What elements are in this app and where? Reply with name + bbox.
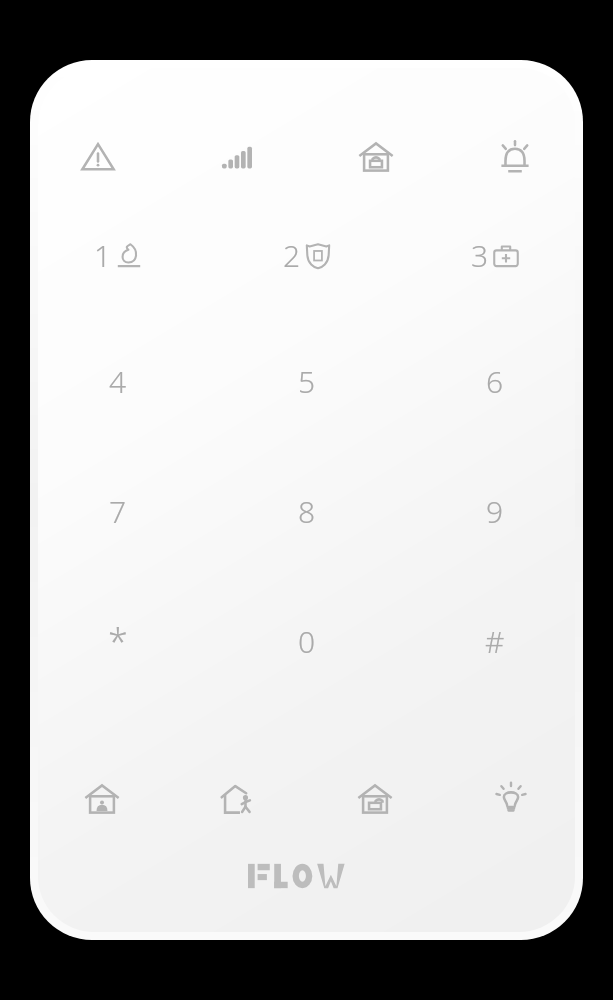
button[interactable]: * (60, 610, 176, 672)
button[interactable]: 3 (437, 220, 553, 290)
staticText: 4 (109, 361, 127, 402)
button[interactable]: 8 (249, 480, 365, 542)
staticText: 0 (298, 621, 316, 662)
staticText: # (485, 621, 505, 662)
button[interactable]: Trouble (60, 126, 136, 188)
button[interactable]: Arm stay (64, 768, 140, 830)
staticText: * (108, 617, 128, 666)
button[interactable]: # (437, 610, 553, 672)
staticText: 8 (298, 491, 316, 532)
button[interactable]: Lights (473, 768, 549, 830)
button[interactable]: 2 (249, 220, 365, 290)
staticText: 7 (109, 491, 127, 532)
button[interactable]: 6 (437, 350, 553, 412)
button[interactable]: Signal strength (199, 126, 275, 188)
button[interactable]: 4 (60, 350, 176, 412)
staticText: 6 (486, 361, 504, 402)
button[interactable]: Disarm (337, 768, 413, 830)
staticText: 2 (283, 235, 301, 276)
staticText: 5 (298, 361, 316, 402)
staticText: 9 (486, 491, 504, 532)
button[interactable]: Arm away (200, 768, 276, 830)
button[interactable]: 1 (60, 220, 176, 290)
staticText: 3 (471, 235, 489, 276)
button[interactable]: 5 (249, 350, 365, 412)
button[interactable]: 7 (60, 480, 176, 542)
button[interactable]: 0 (249, 610, 365, 672)
button[interactable]: FLOW (248, 860, 366, 892)
button[interactable]: Siren (477, 126, 553, 188)
staticText: 1 (94, 235, 112, 276)
button[interactable]: 9 (437, 480, 553, 542)
button[interactable]: System armed (338, 126, 414, 188)
